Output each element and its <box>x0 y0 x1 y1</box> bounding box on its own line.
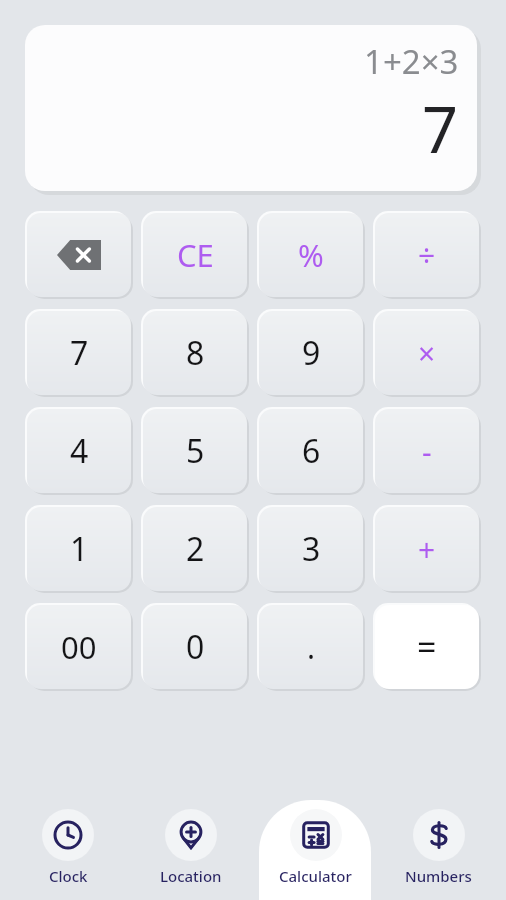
staticText: 9 <box>302 331 321 375</box>
button[interactable]: Backspace <box>25 211 133 299</box>
staticText: 1+2×3 <box>364 39 459 84</box>
staticText: 7 <box>422 86 459 172</box>
staticText: 7 <box>70 331 89 375</box>
staticText: ÷ <box>418 235 436 276</box>
button[interactable]: 0 <box>141 603 249 691</box>
button[interactable]: 4 <box>25 407 133 495</box>
button[interactable]: = <box>373 603 481 691</box>
button[interactable]: Location <box>135 800 247 900</box>
button[interactable]: CE <box>141 211 249 299</box>
button[interactable]: 6 <box>257 407 365 495</box>
staticText: 4 <box>70 429 89 473</box>
staticText: - <box>422 431 432 472</box>
staticText: Clock <box>49 866 88 886</box>
staticText: × <box>418 333 436 374</box>
staticText: Numbers <box>405 866 472 886</box>
staticText: 0 <box>186 625 205 669</box>
button[interactable]: 2 <box>141 505 249 593</box>
button[interactable]: 1 <box>25 505 133 593</box>
staticText: 1 <box>70 527 89 571</box>
button[interactable]: % <box>257 211 365 299</box>
button[interactable]: 7 <box>25 309 133 397</box>
button[interactable]: Numbers <box>382 800 494 900</box>
button[interactable]: 8 <box>141 309 249 397</box>
button[interactable]: 00 <box>25 603 133 691</box>
staticText: 6 <box>302 429 321 473</box>
button[interactable]: 9 <box>257 309 365 397</box>
button[interactable]: × <box>373 309 481 397</box>
button[interactable]: Clock <box>12 800 124 900</box>
staticText: 00 <box>61 626 97 668</box>
button[interactable]: 3 <box>257 505 365 593</box>
staticText: Calculator <box>279 866 352 886</box>
button[interactable]: + <box>373 505 481 593</box>
staticText: 2 <box>186 527 205 571</box>
staticText: . <box>307 627 316 668</box>
staticText: % <box>298 234 324 276</box>
staticText: + <box>418 529 436 570</box>
staticText: 5 <box>186 429 205 473</box>
button[interactable]: . <box>257 603 365 691</box>
button[interactable]: 5 <box>141 407 249 495</box>
staticText: CE <box>177 234 214 276</box>
button[interactable]: ÷ <box>373 211 481 299</box>
button[interactable]: Calculator <box>259 800 371 900</box>
staticText: 3 <box>302 527 321 571</box>
staticText: Location <box>160 866 222 886</box>
staticText: = <box>417 624 437 670</box>
staticText: 8 <box>186 331 205 375</box>
button[interactable]: - <box>373 407 481 495</box>
